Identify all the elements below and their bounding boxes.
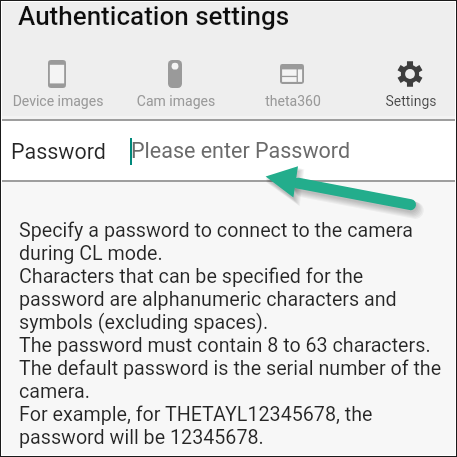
staticText: Specify a password to connect to the cam…: [19, 219, 442, 449]
staticText: Settings: [353, 93, 457, 109]
button[interactable]: Password: [1, 121, 456, 181]
staticText: Cam images: [118, 93, 234, 109]
staticText: Password: [11, 139, 106, 164]
button[interactable]: Device images: [0, 45, 116, 119]
other: Settings: [397, 61, 423, 87]
staticText: theta360: [235, 93, 351, 109]
staticText: Please enter Password: [131, 138, 351, 163]
staticText: Authentication settings: [18, 1, 290, 31]
button[interactable]: Settings: [353, 45, 457, 119]
button[interactable]: Cam images: [118, 45, 234, 119]
button[interactable]: theta360: [235, 45, 351, 119]
other: Device images: [48, 60, 66, 88]
other: Cam images: [168, 60, 182, 88]
other: theta360: [280, 64, 304, 84]
staticText: Device images: [0, 93, 116, 109]
